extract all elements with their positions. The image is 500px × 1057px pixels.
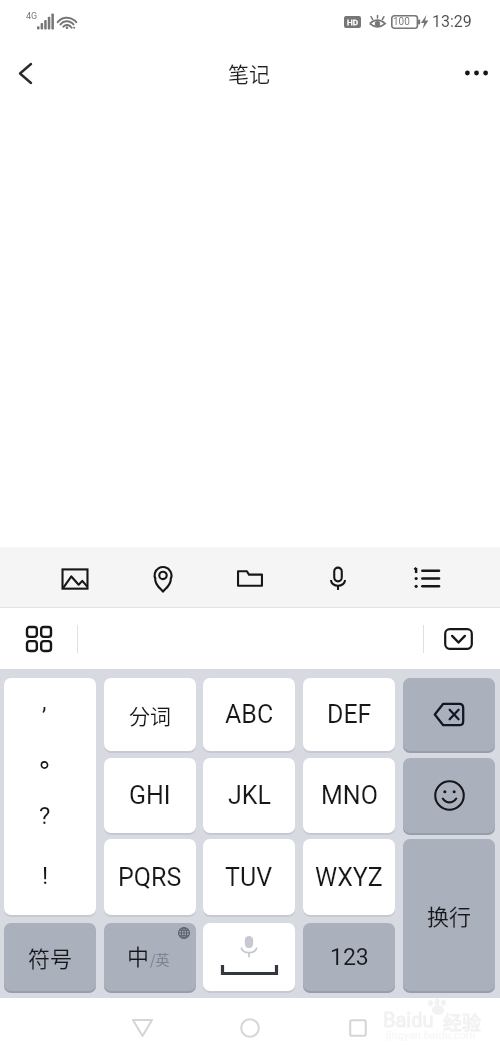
staticText: jingyan.baidu.com: [386, 1029, 476, 1042]
staticText: JKL: [228, 781, 271, 810]
button[interactable]: Punctuation: [4, 678, 96, 915]
button[interactable]: Home: [226, 1004, 274, 1052]
button[interactable]: 符号: [4, 923, 96, 991]
button[interactable]: GHI: [104, 758, 196, 833]
button[interactable]: Voice input: [314, 554, 362, 602]
button[interactable]: TUV: [203, 839, 295, 915]
button[interactable]: Emoji: [403, 758, 495, 833]
staticText: 经验: [443, 1008, 482, 1036]
staticText: Baidu: [383, 1008, 434, 1031]
staticText: 笔记: [228, 58, 270, 88]
staticText: 13:29: [432, 12, 472, 31]
button[interactable]: Backspace: [403, 678, 495, 751]
button[interactable]: MNO: [303, 758, 395, 833]
button[interactable]: WXYZ: [303, 839, 395, 915]
button[interactable]: Insert image: [51, 554, 99, 602]
button[interactable]: More options: [453, 50, 499, 96]
staticText: ,: [42, 689, 47, 716]
staticText: HD: [347, 18, 358, 27]
button[interactable]: Attach file: [226, 554, 274, 602]
button[interactable]: ABC: [203, 678, 295, 751]
button[interactable]: Keyboard layouts: [18, 618, 60, 660]
button[interactable]: Back: [2, 50, 48, 96]
staticText: PQRS: [118, 863, 182, 892]
button[interactable]: Hide keyboard: [438, 619, 478, 659]
staticText: GHI: [129, 781, 171, 810]
staticText: TUV: [225, 863, 273, 892]
button[interactable]: Back: [118, 1004, 166, 1052]
button[interactable]: 换行: [403, 839, 495, 991]
button[interactable]: Recents: [334, 1004, 382, 1052]
staticText: 符号: [28, 941, 73, 973]
staticText: DEF: [327, 700, 372, 729]
button[interactable]: DEF: [303, 678, 395, 751]
staticText: 123: [330, 944, 369, 971]
staticText: 换行: [427, 899, 472, 931]
button[interactable]: Space: [203, 923, 295, 991]
button[interactable]: PQRS: [104, 839, 196, 915]
staticText: 4G: [26, 11, 38, 22]
button[interactable]: Numbered list: [402, 554, 450, 602]
staticText: ?: [39, 802, 51, 830]
staticText: MNO: [321, 781, 378, 810]
staticText: ABC: [225, 700, 274, 729]
button[interactable]: Add location: [139, 554, 187, 602]
button[interactable]: JKL: [203, 758, 295, 833]
button[interactable]: 分词: [104, 678, 196, 751]
staticText: 中: [127, 939, 150, 971]
button[interactable]: 123: [303, 923, 395, 991]
staticText: /英: [150, 949, 170, 969]
staticText: 分词: [129, 700, 171, 730]
button[interactable]: 中/英: [104, 923, 196, 991]
staticText: WXYZ: [315, 863, 383, 892]
staticText: !: [42, 862, 49, 890]
staticText: 100: [393, 16, 410, 28]
